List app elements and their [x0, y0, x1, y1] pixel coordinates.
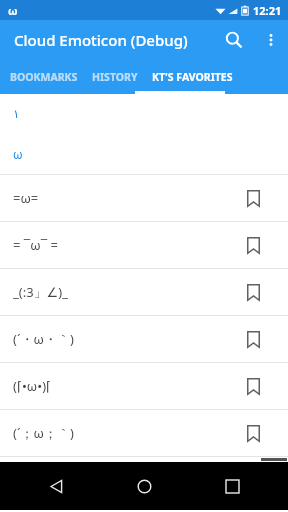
button[interactable]: HISTORY [92, 60, 138, 94]
staticText: = ¯ω¯ = [13, 236, 59, 254]
button[interactable]: Bookmark [233, 319, 273, 359]
staticText: _(:3」∠)_ [13, 283, 68, 301]
button[interactable]: Bookmark [233, 225, 273, 265]
staticText: (⌈•ω•)⌈ [13, 377, 52, 395]
staticText: HISTORY [92, 70, 138, 84]
button[interactable]: More options [254, 23, 288, 57]
button[interactable]: = ¯ω¯ = [0, 222, 288, 268]
button[interactable]: Search [214, 20, 254, 60]
button[interactable]: Back [34, 464, 78, 508]
button[interactable]: Bookmark [233, 178, 273, 218]
button[interactable]: ω [0, 134, 288, 174]
button[interactable]: Bookmark [233, 272, 273, 312]
button[interactable]: BOOKMARKS [10, 60, 78, 94]
staticText: KT'S FAVORITES [152, 70, 233, 84]
staticText: =ω= [13, 189, 39, 207]
button[interactable]: =ω= [0, 175, 288, 221]
staticText: (´；ω；｀) [13, 424, 74, 442]
button[interactable]: Home [122, 464, 166, 508]
staticText: ۱ [13, 107, 20, 121]
staticText: 12:21 [253, 3, 282, 18]
staticText: Cloud Emoticon (Debug) [14, 30, 188, 50]
button[interactable]: Recents [210, 464, 254, 508]
button[interactable]: _(:3」∠)_ [0, 269, 288, 315]
button[interactable]: (´；ω；｀) [0, 410, 288, 456]
staticText: ω [8, 3, 18, 18]
button[interactable]: ۱ [0, 94, 288, 134]
button[interactable]: KT'S FAVORITES [152, 60, 233, 94]
button[interactable]: Bookmark [233, 413, 273, 453]
button[interactable]: (⌈•ω•)⌈ [0, 363, 288, 409]
button[interactable]: Bookmark [233, 366, 273, 406]
staticText: ω [13, 146, 23, 162]
staticText: (´・ω・｀) [13, 330, 74, 348]
staticText: BOOKMARKS [10, 70, 78, 84]
button[interactable]: (´・ω・｀) [0, 316, 288, 362]
